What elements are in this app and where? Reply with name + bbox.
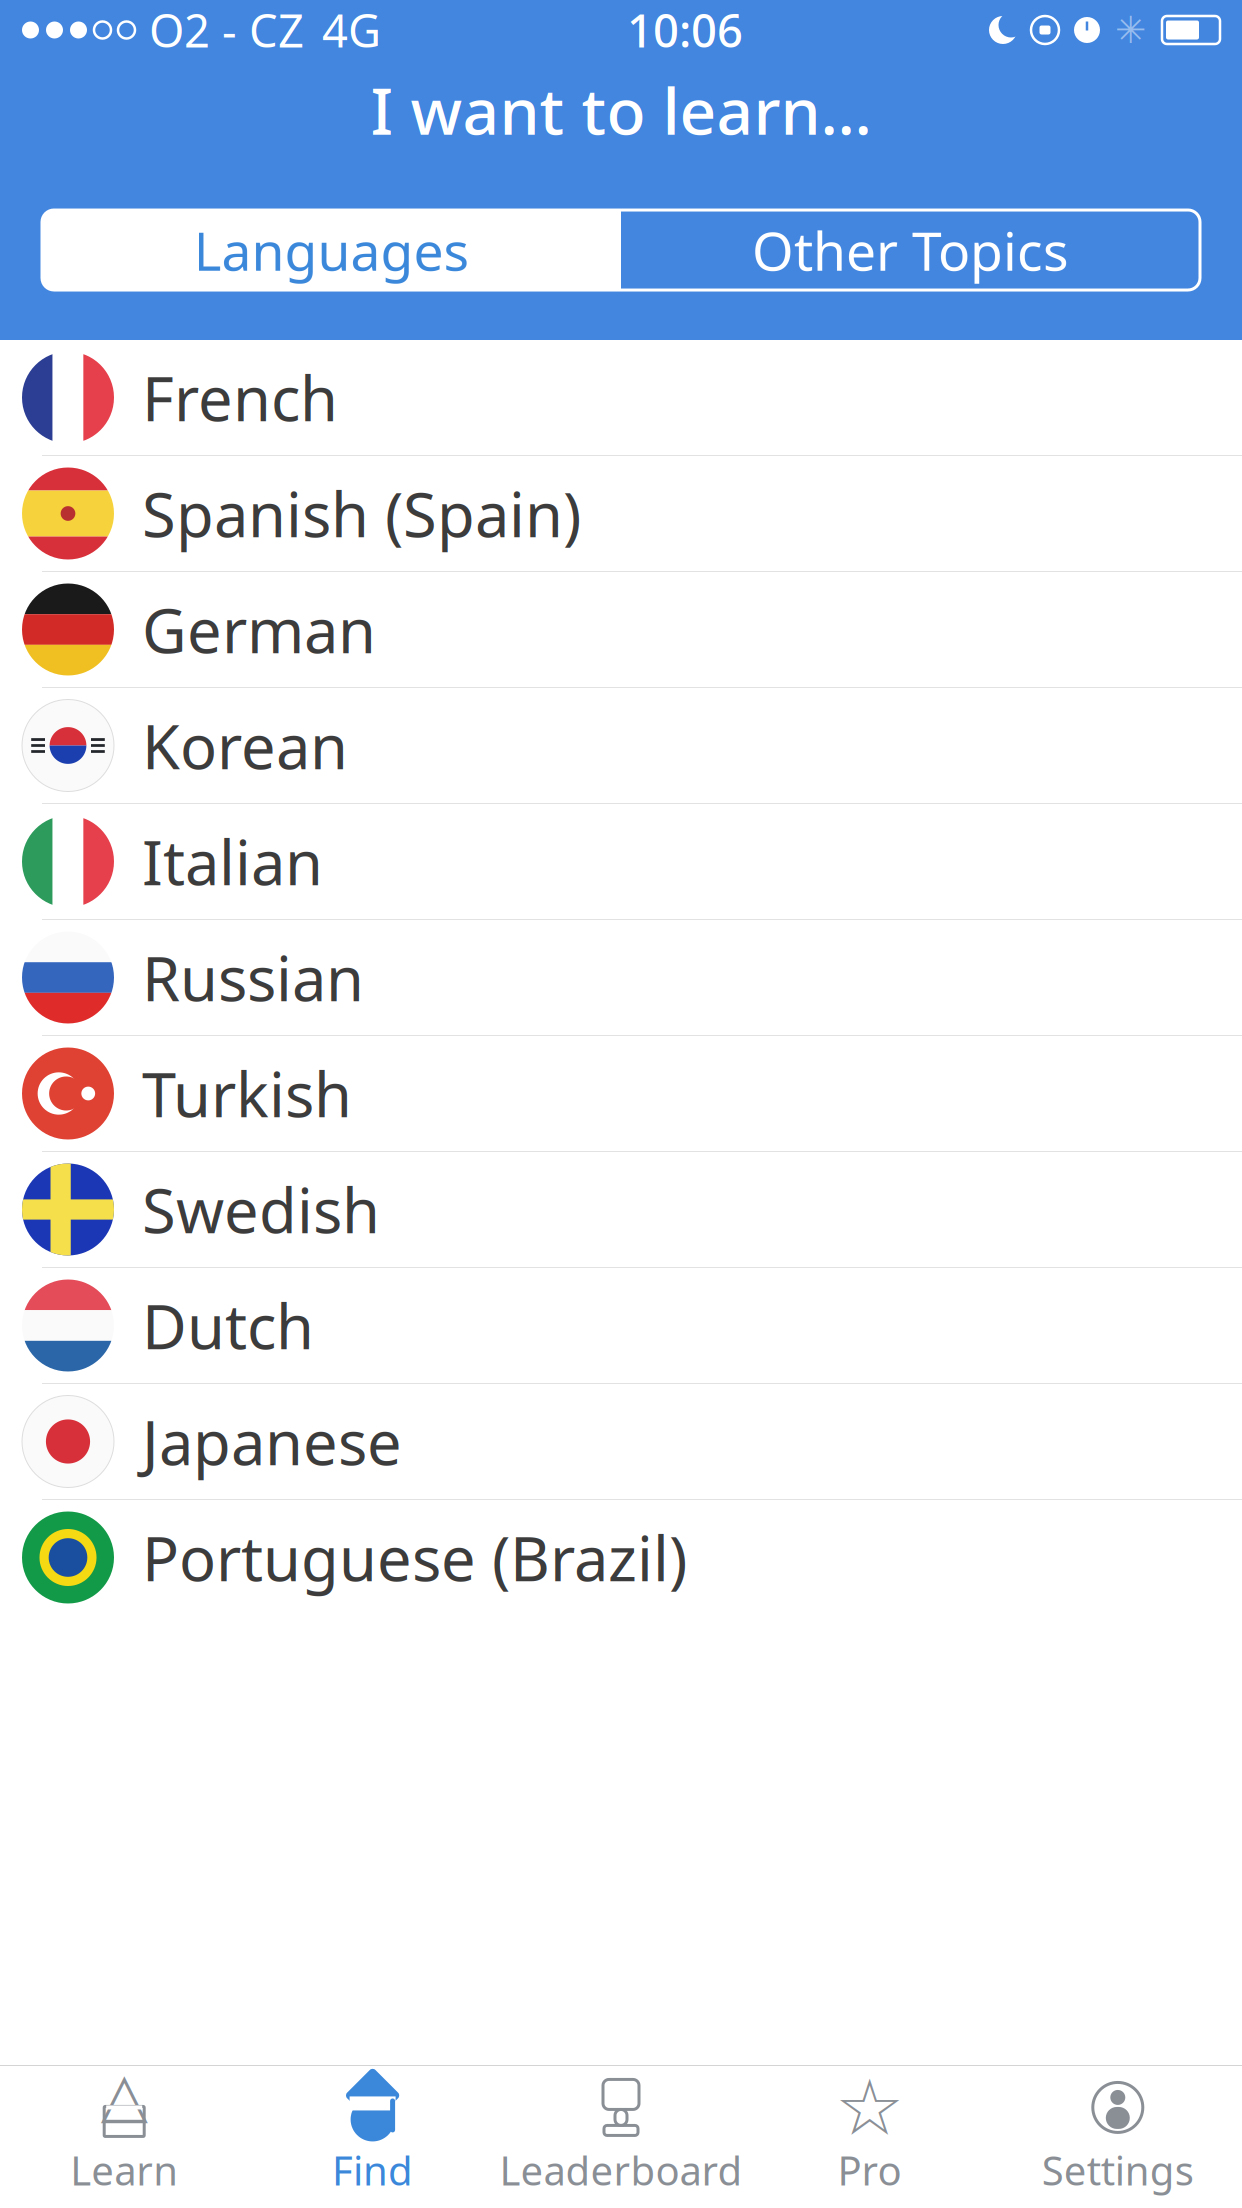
button[interactable]: Spanish (Spain) <box>0 456 1242 572</box>
staticText: △ <box>101 2060 148 2129</box>
staticText: Japanese <box>142 1401 402 1482</box>
staticText: 4G <box>322 0 381 60</box>
staticText: Dutch <box>142 1285 314 1366</box>
button[interactable]: Find <box>248 2067 497 2207</box>
staticText: O2 - CZ <box>149 0 304 60</box>
button[interactable]: Languages <box>42 210 621 290</box>
staticText: Spanish (Spain) <box>142 473 581 554</box>
staticText: Korean <box>142 705 348 786</box>
button[interactable]: △ <box>0 2067 248 2207</box>
staticText: Turkish <box>142 1053 352 1134</box>
staticText: ✳ <box>1115 9 1146 51</box>
staticText: Portuguese (Brazil) <box>142 1517 687 1598</box>
button[interactable]: Dutch <box>0 1268 1242 1384</box>
staticText: Languages <box>193 215 469 285</box>
button[interactable]: Swedish <box>0 1152 1242 1268</box>
staticText: Swedish <box>142 1169 380 1250</box>
button[interactable]: ☆ <box>745 2067 994 2207</box>
button[interactable]: German <box>0 572 1242 688</box>
button[interactable]: Japanese <box>0 1384 1242 1500</box>
staticText: Learn <box>70 2143 178 2196</box>
button[interactable]: Korean <box>0 688 1242 804</box>
staticText: French <box>142 357 338 438</box>
staticText: Italian <box>142 821 323 902</box>
staticText: Find <box>332 2143 413 2196</box>
button[interactable]: Leaderboard <box>497 2067 745 2207</box>
staticText: 10:06 <box>627 0 743 60</box>
staticText: ☆ <box>835 2064 904 2151</box>
staticText: Settings <box>1042 2143 1194 2196</box>
button[interactable]: Settings <box>994 2067 1242 2207</box>
button[interactable]: Italian <box>0 804 1242 920</box>
staticText: Other Topics <box>752 215 1069 285</box>
staticText: Leaderboard <box>499 2143 742 2196</box>
staticText: I want to learn... <box>370 67 871 152</box>
staticText: Russian <box>142 937 364 1018</box>
button[interactable]: Russian <box>0 920 1242 1036</box>
button[interactable]: Turkish <box>0 1036 1242 1152</box>
staticText: Pro <box>837 2143 901 2196</box>
button[interactable]: Portuguese (Brazil) <box>0 1500 1242 1615</box>
button[interactable]: French <box>0 340 1242 456</box>
staticText: German <box>142 589 376 670</box>
button[interactable]: Other Topics <box>621 210 1200 290</box>
